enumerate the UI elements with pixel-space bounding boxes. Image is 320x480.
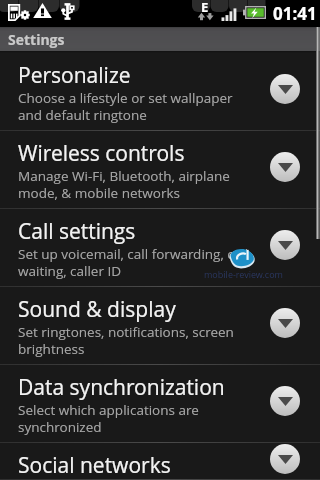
staticText: Social networks bbox=[18, 451, 171, 480]
button[interactable]: Call settings bbox=[0, 209, 320, 287]
staticText: Data synchronization bbox=[18, 373, 225, 402]
button[interactable]: Wireless controls bbox=[0, 131, 320, 209]
staticText: mobile-review.com bbox=[204, 268, 283, 280]
staticText: Personalize bbox=[18, 61, 131, 90]
button[interactable]: Sound & display bbox=[0, 287, 320, 365]
staticText: Settings bbox=[8, 30, 65, 49]
button[interactable]: Expand bbox=[270, 386, 300, 416]
button[interactable]: Expand bbox=[270, 230, 300, 260]
button[interactable]: Expand bbox=[270, 444, 300, 474]
staticText: Sound & display bbox=[18, 295, 176, 324]
staticText: Select which applications are synchroniz… bbox=[18, 401, 250, 436]
staticText: Call settings bbox=[18, 217, 136, 246]
button[interactable]: Expand bbox=[270, 308, 300, 338]
button[interactable]: Social networks bbox=[0, 443, 320, 480]
button[interactable]: Data synchronization bbox=[0, 365, 320, 443]
staticText: Set up voicemail, call forwarding, call … bbox=[18, 245, 250, 280]
staticText: 01:41 bbox=[273, 2, 317, 25]
button[interactable]: Expand bbox=[270, 74, 300, 104]
staticText: Set ringtones, notifications, screen bri… bbox=[18, 323, 250, 358]
staticText: Manage Wi-Fi, Bluetooth, airplane mode, … bbox=[18, 167, 250, 202]
button[interactable]: Expand bbox=[270, 152, 300, 182]
staticText: E bbox=[201, 0, 209, 16]
staticText: Wireless controls bbox=[18, 139, 185, 168]
staticText: Choose a lifestyle or set wallpaper and … bbox=[18, 89, 250, 124]
button[interactable]: Personalize bbox=[0, 53, 320, 131]
